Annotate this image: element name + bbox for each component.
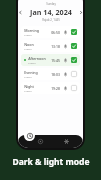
button[interactable]: Settings — [62, 137, 71, 146]
button[interactable]: Marked as prayed — [71, 43, 77, 49]
staticText: 06:50 — [51, 30, 60, 35]
button[interactable]: Previous day — [18, 10, 23, 15]
staticText: Prayer — [24, 89, 32, 92]
staticText: Dark & light mode — [12, 156, 90, 168]
staticText: Prayer — [24, 75, 32, 78]
staticText: Prayer — [24, 33, 32, 36]
staticText: Evening — [24, 70, 38, 75]
button[interactable]: Notification — [63, 44, 68, 49]
staticText: Sunday — [46, 2, 56, 6]
staticText: Jan 14, 2024 — [30, 7, 72, 17]
staticText: 15:45 — [51, 58, 60, 63]
staticText: 13:18 — [51, 44, 60, 49]
staticText: Afternoon — [28, 56, 46, 61]
button[interactable]: Evening — [21, 68, 80, 80]
button[interactable]: Notification — [63, 30, 68, 35]
staticText: Morning — [24, 28, 39, 33]
button[interactable]: Next day — [79, 10, 83, 15]
button[interactable]: Afternoon — [21, 54, 80, 66]
button[interactable]: Mark as prayed — [71, 71, 77, 77]
staticText: 18:03 — [51, 72, 60, 77]
staticText: Rajab 2, 1445 — [42, 18, 60, 22]
button[interactable]: Notification — [63, 72, 68, 77]
button[interactable]: Marked as prayed — [71, 57, 77, 63]
staticText: Night — [24, 84, 34, 89]
button[interactable]: Morning — [21, 26, 80, 38]
staticText: Noon — [24, 42, 34, 47]
button[interactable]: Mark as prayed — [71, 85, 77, 91]
button[interactable]: Qibla — [36, 137, 45, 146]
button[interactable]: Notification — [63, 86, 68, 91]
button[interactable]: Prayer times — [24, 130, 35, 141]
button[interactable]: Notification — [63, 58, 68, 63]
button[interactable]: Noon — [21, 40, 80, 52]
button[interactable]: Night — [21, 82, 80, 94]
staticText: Prayer — [28, 61, 36, 64]
staticText: Prayer — [24, 47, 32, 50]
button[interactable]: Marked as prayed — [71, 29, 77, 35]
staticText: 19:28 — [51, 86, 60, 91]
